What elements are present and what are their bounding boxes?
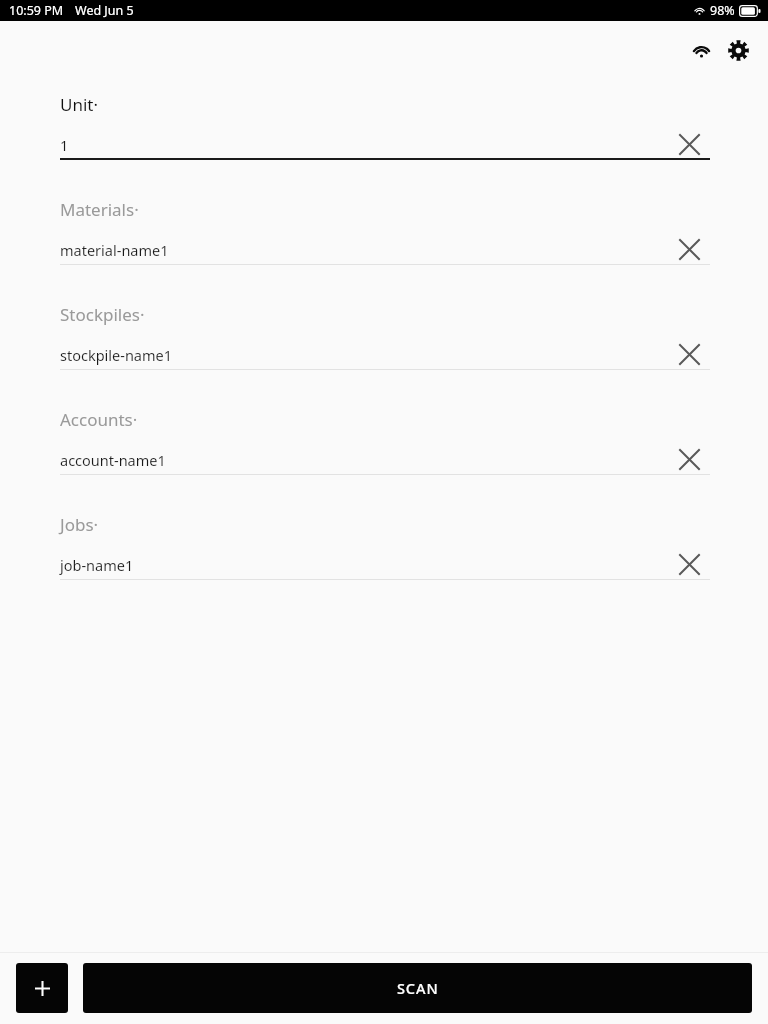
button[interactable]: Stockpiles·: [0, 288, 768, 393]
button[interactable]: Settings: [720, 32, 756, 68]
button[interactable]: SCAN: [83, 963, 752, 1013]
staticText: job-name1: [60, 555, 134, 575]
staticText: 98%: [710, 2, 735, 19]
staticText: Materials·: [60, 198, 139, 221]
button[interactable]: Unit·: [0, 78, 768, 183]
button[interactable]: Clear Materials: [669, 229, 709, 269]
staticText: SCAN: [397, 978, 439, 998]
button[interactable]: Wi-Fi connection: [683, 32, 719, 68]
staticText: Stockpiles·: [60, 303, 145, 326]
button[interactable]: Clear Stockpiles: [669, 334, 709, 374]
staticText: stockpile-name1: [60, 345, 173, 365]
button[interactable]: Clear Accounts: [669, 439, 709, 479]
staticText: material-name1: [60, 240, 169, 260]
button[interactable]: Jobs·: [0, 498, 768, 603]
staticText: 10:59 PM: [9, 2, 64, 19]
button[interactable]: Add item: [16, 963, 68, 1013]
staticText: account-name1: [60, 450, 166, 470]
button[interactable]: Clear Jobs: [669, 544, 709, 584]
button[interactable]: Clear Unit: [669, 124, 709, 164]
staticText: Unit·: [60, 93, 99, 116]
staticText: Wed Jun 5: [75, 2, 134, 19]
staticText: Accounts·: [60, 408, 138, 431]
button[interactable]: Materials·: [0, 183, 768, 288]
staticText: 1: [60, 135, 69, 155]
staticText: Jobs·: [60, 513, 99, 536]
button[interactable]: Accounts·: [0, 393, 768, 498]
